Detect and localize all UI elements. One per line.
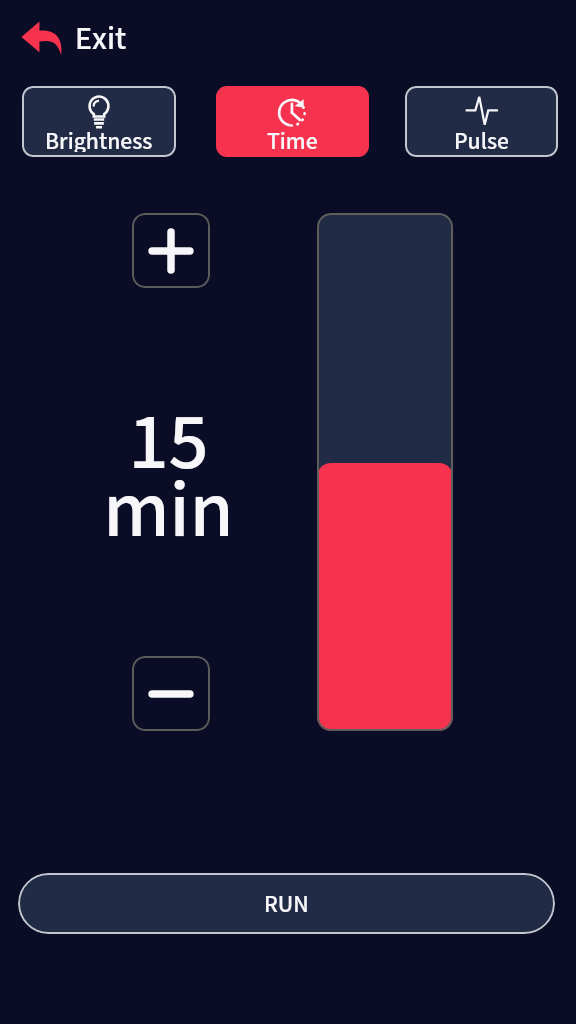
button[interactable]: Time level [317,213,453,731]
button[interactable]: Exit [21,17,127,57]
staticText: Brightness [45,125,153,152]
button[interactable]: Increase [132,213,210,288]
button[interactable]: Time [216,86,369,157]
button[interactable]: Decrease [132,656,210,731]
button[interactable]: Brightness [22,86,176,157]
staticText: Pulse [454,125,509,152]
staticText: 15 min [103,389,234,563]
staticText: RUN [264,888,309,920]
button[interactable]: RUN [18,873,555,934]
other: Exit [21,18,62,56]
button[interactable]: Pulse [405,86,558,157]
staticText: Exit [75,17,127,57]
staticText: Time [267,125,318,152]
